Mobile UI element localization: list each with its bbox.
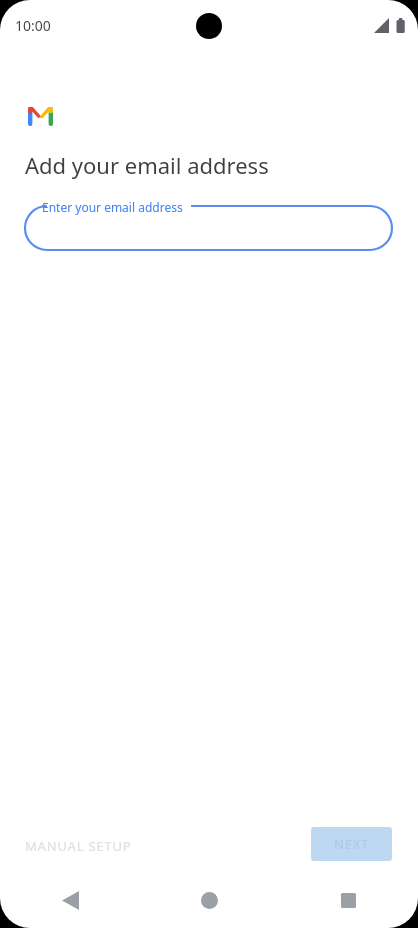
button[interactable]: Home xyxy=(140,872,279,928)
button[interactable]: NEXT xyxy=(311,827,392,861)
button[interactable]: Enter your email address xyxy=(25,196,392,260)
staticText: 10:00 xyxy=(15,16,51,35)
staticText: Enter your email address xyxy=(42,199,183,215)
button[interactable]: MANUAL SETUP xyxy=(12,829,145,863)
staticText: NEXT xyxy=(334,835,370,853)
button[interactable]: Recent apps xyxy=(279,872,418,928)
button[interactable]: Back xyxy=(0,872,140,928)
staticText: Add your email address xyxy=(25,150,269,180)
